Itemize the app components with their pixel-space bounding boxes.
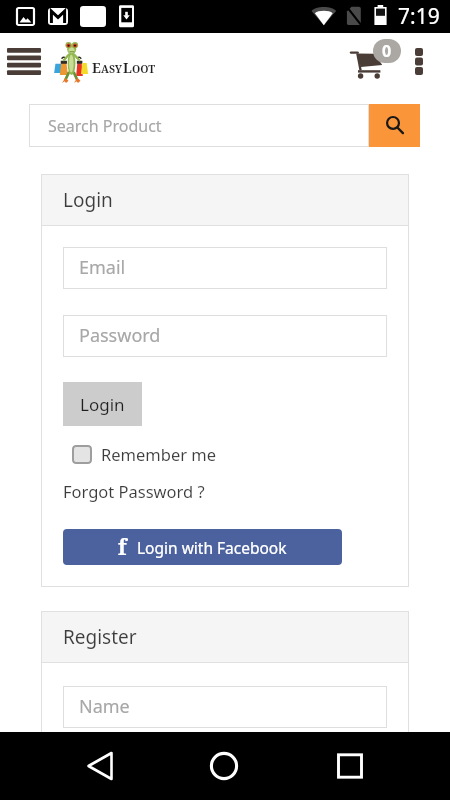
staticText: ASY (101, 62, 123, 76)
button[interactable]: Name (63, 686, 387, 728)
button[interactable]: Remember me (63, 442, 217, 466)
button[interactable]: Menu (4, 44, 44, 79)
staticText: Password (79, 323, 161, 348)
staticText: Login (63, 187, 113, 213)
staticText: Search Product (48, 115, 162, 137)
button[interactable]: Home (176, 732, 272, 800)
staticText: OOT (132, 62, 156, 76)
staticText: Email (79, 255, 126, 280)
button[interactable]: Shopping cart (344, 35, 404, 83)
staticText: E (92, 59, 101, 77)
button[interactable]: Login (63, 382, 142, 426)
button[interactable]: More options (408, 43, 430, 80)
button[interactable]: Search (369, 104, 420, 147)
staticText: Remember me (101, 443, 217, 465)
button[interactable]: Email (63, 247, 387, 289)
staticText: Name (79, 694, 130, 719)
button[interactable]: Search Product (29, 104, 369, 147)
button[interactable]: Recent apps (302, 732, 398, 800)
button[interactable]: f (63, 529, 342, 565)
staticText: f (118, 533, 127, 562)
staticText: L (123, 59, 132, 77)
button[interactable]: Email (63, 754, 387, 796)
staticText: Login with Facebook (137, 537, 287, 558)
staticText: 0 (382, 40, 392, 62)
button[interactable]: Password (63, 315, 387, 357)
button[interactable]: EasyLoot home (49, 38, 95, 88)
button[interactable]: Back (52, 732, 148, 800)
button[interactable]: Forgot Password ? (63, 480, 205, 502)
staticText: Email (79, 762, 126, 787)
staticText: Register (63, 624, 137, 650)
staticText: 7:19 (398, 2, 440, 31)
staticText: Login (80, 393, 125, 416)
